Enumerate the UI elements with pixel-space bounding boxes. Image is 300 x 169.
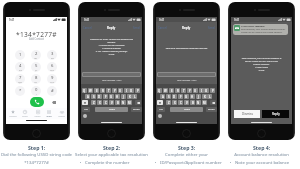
button[interactable] <box>82 72 141 77</box>
button[interactable]: Keypad <box>43 108 55 119</box>
button[interactable]: return <box>206 107 217 112</box>
button[interactable]: A <box>160 94 165 99</box>
button[interactable]: T <box>181 88 186 93</box>
staticText: M <box>128 101 131 105</box>
button[interactable]: L <box>132 94 137 99</box>
button[interactable]: V <box>109 100 114 105</box>
button[interactable]: Dictation <box>83 114 87 118</box>
button[interactable]: O <box>204 88 209 93</box>
staticText: C <box>105 101 107 105</box>
button[interactable]: B <box>190 100 195 105</box>
button[interactable]: 9 <box>47 74 57 84</box>
button[interactable]: Reply <box>262 110 289 118</box>
button[interactable]: Dictation <box>158 114 162 118</box>
button[interactable]: 1 <box>15 50 25 60</box>
button[interactable]: P <box>210 88 215 93</box>
button[interactable]: P <box>135 88 140 93</box>
button[interactable]: Delete <box>210 100 216 105</box>
button[interactable]: Backspace <box>49 98 58 107</box>
button[interactable]: J <box>196 94 201 99</box>
staticText: *134*7277# <box>16 30 57 38</box>
button[interactable]: Voicemail <box>55 108 67 119</box>
button[interactable]: I <box>124 88 129 93</box>
button[interactable]: N <box>196 100 201 105</box>
button[interactable]: Send <box>133 26 140 30</box>
button[interactable]: U <box>118 88 123 93</box>
button[interactable]: *134*7277#: response <box>234 25 287 34</box>
button[interactable]: V <box>184 100 189 105</box>
button[interactable]: S <box>91 94 96 99</box>
button[interactable]: E <box>169 88 174 93</box>
button[interactable]: 3 <box>47 50 57 60</box>
button[interactable]: D <box>97 94 102 99</box>
button[interactable]: X <box>172 100 177 105</box>
button[interactable]: N <box>121 100 126 105</box>
staticText: I <box>126 89 127 93</box>
button[interactable]: K <box>127 94 132 99</box>
button[interactable]: Shift <box>157 100 163 105</box>
button[interactable]: Favourites <box>6 108 19 119</box>
button[interactable]: U <box>193 88 198 93</box>
staticText: W <box>164 89 167 93</box>
button[interactable]: W <box>88 88 93 93</box>
button[interactable]: # <box>47 86 57 96</box>
button[interactable]: I <box>199 88 204 93</box>
staticText: Reply <box>272 112 280 116</box>
button[interactable]: Recents <box>19 108 31 119</box>
button[interactable]: M <box>127 100 132 105</box>
button[interactable]: J <box>121 94 126 99</box>
button[interactable]: 7 <box>15 74 25 84</box>
button[interactable]: F <box>103 94 108 99</box>
button[interactable]: H <box>190 94 195 99</box>
button[interactable]: R <box>100 88 105 93</box>
button[interactable]: D <box>172 94 177 99</box>
button[interactable]: C <box>103 100 108 105</box>
button[interactable]: Cancel <box>158 26 167 30</box>
button[interactable]: T <box>106 88 111 93</box>
button[interactable]: 6 <box>47 62 57 72</box>
button[interactable]: Q <box>157 88 162 93</box>
button[interactable]: 2 <box>31 50 41 60</box>
button[interactable]: Cancel <box>83 26 92 30</box>
button[interactable]: Shift <box>82 100 88 105</box>
button[interactable]: X <box>97 100 102 105</box>
button[interactable]: 4 <box>15 62 25 72</box>
button[interactable]: A <box>85 94 90 99</box>
button[interactable]: G <box>109 94 114 99</box>
button[interactable]: 5 <box>31 62 41 72</box>
button[interactable]: O <box>129 88 134 93</box>
button[interactable]: M <box>202 100 207 105</box>
button[interactable]: G <box>184 94 189 99</box>
button[interactable]: 0 <box>31 86 41 96</box>
button[interactable]: Contacts <box>31 108 43 119</box>
button[interactable]: L <box>207 94 212 99</box>
button[interactable]: K <box>202 94 207 99</box>
button[interactable]: E <box>94 88 99 93</box>
button[interactable]: F <box>178 94 183 99</box>
button[interactable]: Dismiss <box>234 110 260 118</box>
button[interactable]: Send <box>208 26 215 30</box>
button[interactable]: Y <box>112 88 117 93</box>
button[interactable]: S <box>166 94 171 99</box>
button[interactable]: Call <box>30 97 44 107</box>
button[interactable]: Q <box>82 88 87 93</box>
button[interactable]: space <box>170 107 203 112</box>
button[interactable]: space <box>95 107 128 112</box>
button[interactable]: C <box>178 100 183 105</box>
button[interactable]: Y <box>187 88 192 93</box>
staticText: Y <box>189 89 191 93</box>
button[interactable]: 8 <box>31 74 41 84</box>
button[interactable]: R <box>175 88 180 93</box>
button[interactable] <box>157 72 216 77</box>
button[interactable]: H <box>115 94 120 99</box>
button[interactable]: B <box>115 100 120 105</box>
staticText: K <box>129 95 131 99</box>
button[interactable]: Z <box>91 100 96 105</box>
button[interactable]: Z <box>166 100 171 105</box>
button[interactable]: W <box>163 88 168 93</box>
button[interactable]: 123 <box>82 107 90 112</box>
button[interactable]: return <box>131 107 142 112</box>
button[interactable]: 123 <box>157 107 165 112</box>
button[interactable]: Delete <box>135 100 141 105</box>
button[interactable]: * <box>15 86 25 96</box>
